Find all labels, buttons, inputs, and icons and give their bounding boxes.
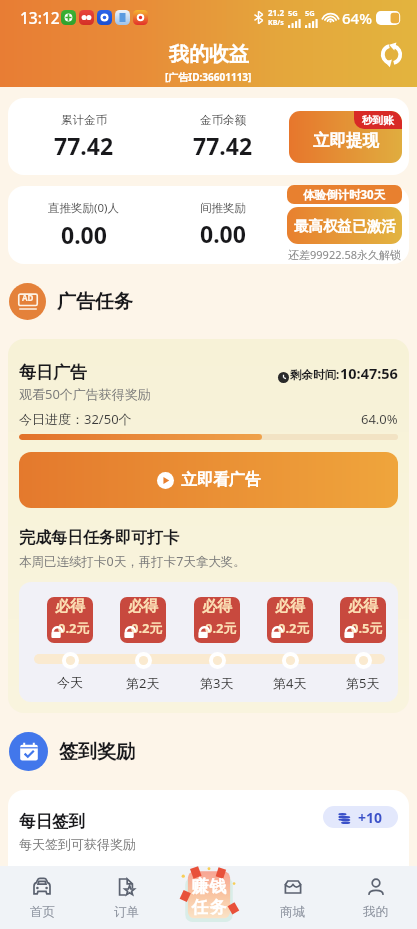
staticText: 间推奖励: [200, 201, 246, 215]
button[interactable]: 订单: [84, 866, 168, 929]
staticText: 订单: [114, 904, 139, 920]
staticText: 完成每日任务即可打卡: [19, 528, 179, 548]
staticText: 秒到账: [362, 114, 394, 127]
staticText: 必得: [348, 597, 378, 616]
staticText: 累计金币: [61, 113, 107, 127]
staticText: 0.00: [61, 219, 107, 250]
staticText: 体验倒计时30天: [303, 187, 386, 203]
staticText: 首页: [30, 904, 55, 920]
staticText: 13:12: [20, 7, 60, 28]
staticText: AD: [22, 292, 34, 303]
button[interactable]: 最高权益已激活: [287, 207, 402, 244]
staticText: 观看50个广告获得奖励: [19, 385, 151, 403]
staticText: 每日签到: [19, 811, 85, 832]
button[interactable]: 必得: [194, 597, 240, 643]
staticText: 0.2元: [58, 619, 90, 637]
staticText: 5G: [288, 8, 298, 18]
staticText: 赚钱: [191, 876, 227, 897]
staticText: 立即看广告: [181, 470, 261, 490]
button[interactable]: 秒到账: [289, 111, 402, 163]
button[interactable]: 立即看广告: [19, 452, 398, 508]
staticText: 第5天: [346, 674, 380, 692]
button[interactable]: 首页: [0, 866, 84, 929]
staticText: 0.2元: [131, 619, 163, 637]
staticText: 第3天: [200, 674, 234, 692]
staticText: 立即提现: [313, 130, 379, 151]
button[interactable]: 体验倒计时30天: [287, 185, 402, 204]
staticText: KB/s: [268, 18, 284, 28]
button[interactable]: 赚钱任务: [176, 865, 242, 927]
staticText: [广告ID:36601113]: [165, 70, 252, 84]
staticText: 0.00: [200, 218, 246, 249]
button[interactable]: 我的: [334, 866, 417, 929]
button[interactable]: 商城: [251, 866, 334, 929]
staticText: 0.2元: [205, 619, 237, 637]
staticText: 剩余时间:: [290, 367, 340, 383]
staticText: 77.42: [193, 130, 253, 161]
button[interactable]: +10: [323, 806, 398, 828]
staticText: 必得: [202, 597, 232, 616]
staticText: 金币余额: [200, 113, 246, 127]
staticText: 商城: [280, 904, 305, 920]
staticText: 本周已连续打卡0天，再打卡7天拿大奖。: [19, 553, 246, 570]
staticText: 必得: [275, 597, 305, 616]
staticText: 0.2元: [278, 619, 310, 637]
staticText: 还差99922.58永久解锁: [288, 247, 401, 262]
staticText: 77.42: [54, 130, 114, 161]
button[interactable]: 必得: [120, 597, 166, 643]
staticText: 第4天: [273, 674, 307, 692]
staticText: 广告任务: [57, 290, 133, 314]
staticText: 必得: [55, 597, 85, 616]
staticText: 直推奖励(0)人: [48, 200, 119, 216]
staticText: 10:47:56: [340, 363, 398, 383]
staticText: 每日广告: [19, 362, 87, 383]
staticText: 每天签到可获得奖励: [19, 836, 136, 852]
staticText: 任务: [191, 897, 227, 918]
button[interactable]: 必得: [47, 597, 93, 643]
staticText: +10: [358, 808, 383, 827]
staticText: 必得: [128, 597, 158, 616]
staticText: 签到奖励: [59, 740, 135, 764]
staticText: 我的收益: [169, 42, 249, 67]
staticText: 5G: [305, 8, 315, 18]
staticText: 0.5元: [351, 619, 383, 637]
button[interactable]: 必得: [340, 597, 386, 643]
staticText: 今天: [57, 674, 83, 690]
staticText: 21.2: [268, 7, 284, 18]
staticText: 今日进度：32/50个: [19, 410, 132, 428]
button[interactable]: 必得: [267, 597, 313, 643]
staticText: 64%: [342, 8, 372, 28]
staticText: 我的: [363, 904, 388, 920]
button[interactable]: 刷新: [378, 41, 405, 68]
staticText: 第2天: [126, 674, 160, 692]
staticText: 64.0%: [361, 410, 398, 428]
staticText: 最高权益已激活: [294, 217, 396, 235]
